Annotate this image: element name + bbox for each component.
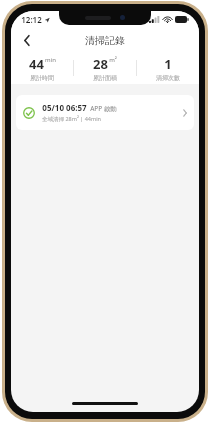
staticText: 28	[93, 55, 108, 73]
button[interactable]: 28	[74, 55, 136, 82]
button[interactable]: Back	[16, 29, 38, 51]
staticText: APP 啟動	[90, 104, 117, 113]
staticText: 清掃記錄	[85, 34, 125, 47]
staticText: 全域清掃 28m² | 44min	[42, 115, 101, 123]
staticText: 累計面積	[93, 74, 117, 82]
button[interactable]: 05/10 06:57	[16, 95, 194, 130]
staticText: 44	[29, 55, 44, 73]
staticText: m²	[109, 56, 117, 64]
staticText: 清掃次數	[156, 74, 180, 82]
staticText: 1	[164, 55, 172, 73]
button[interactable]: 44	[11, 55, 73, 82]
staticText: 05/10 06:57	[42, 102, 87, 113]
button[interactable]: 1	[137, 55, 199, 82]
staticText: min	[45, 56, 56, 64]
staticText: 累計時間	[30, 74, 54, 82]
staticText: 12:12	[21, 14, 42, 25]
